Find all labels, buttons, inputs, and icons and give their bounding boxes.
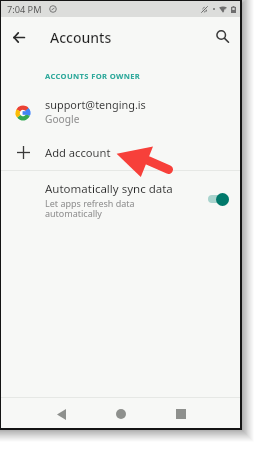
staticText: ACCOUNTS FOR OWNER bbox=[45, 71, 141, 81]
staticText: 7:04 PM bbox=[7, 3, 42, 16]
staticText: Accounts bbox=[50, 28, 112, 47]
button[interactable]: Navigate up bbox=[1, 17, 37, 56]
button[interactable]: Home bbox=[91, 398, 151, 428]
button[interactable]: Search bbox=[205, 17, 239, 56]
button[interactable]: Back bbox=[31, 398, 91, 428]
staticText: Add account bbox=[45, 145, 111, 160]
button[interactable]: Recent apps bbox=[151, 398, 211, 428]
staticText: Let apps refresh data automatically bbox=[45, 197, 135, 220]
staticText: Google bbox=[45, 112, 80, 126]
staticText: Automatically sync data bbox=[45, 181, 173, 197]
button[interactable]: Automatically sync data bbox=[1, 181, 240, 220]
button[interactable]: Add account bbox=[1, 145, 240, 160]
button[interactable]: support@tenging.is bbox=[1, 96, 240, 126]
staticText: support@tenging.is bbox=[45, 97, 146, 112]
